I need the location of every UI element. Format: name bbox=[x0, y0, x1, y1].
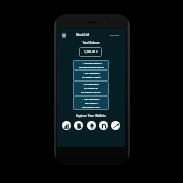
button[interactable]: Portfolio bbox=[62, 121, 71, 130]
staticText: NEO Addresses: 1 bbox=[84, 98, 100, 101]
button[interactable]: Markets bbox=[111, 121, 120, 130]
staticText: 1,280.60 € bbox=[84, 50, 98, 54]
staticText: ETH Addresses: 1 bbox=[84, 83, 100, 86]
staticText: Explore Your Wallets bbox=[57, 114, 125, 118]
staticText: Total Balance bbox=[57, 41, 125, 45]
staticText: ETH Balance: 185.87 € bbox=[81, 91, 101, 94]
button[interactable]: Open menu bbox=[61, 31, 67, 39]
staticText: Exchange Tokens: 3 bbox=[84, 62, 102, 65]
button[interactable]: 1,280.60 € bbox=[79, 47, 102, 57]
staticText: Exchange Balance: 958.18 € bbox=[79, 66, 104, 69]
button[interactable]: NEO Addresses: 1 bbox=[73, 96, 109, 110]
button[interactable]: NEO wallet bbox=[99, 121, 108, 130]
button[interactable]: Ethereum wallet bbox=[87, 121, 96, 130]
button[interactable]: Exchange Tokens: 3 bbox=[73, 60, 109, 70]
staticText: ETH Tokens: 29 bbox=[84, 87, 98, 90]
button[interactable]: BTC Addresses: 1 bbox=[73, 70, 109, 81]
staticText: BTC Addresses: 1 bbox=[85, 72, 101, 75]
staticText: BTC Balance: 0.081 ₿ bbox=[82, 76, 101, 79]
button[interactable]: ETH Addresses: 1 bbox=[73, 81, 109, 96]
staticText: NEO Tokens: 4 bbox=[85, 102, 98, 105]
button[interactable]: FULL SYNC bbox=[110, 34, 119, 36]
button[interactable]: Bitcoin wallet bbox=[74, 121, 83, 130]
staticText: BlackCell bbox=[76, 33, 90, 37]
staticText: NEO Balance: 1.45 € bbox=[82, 106, 100, 109]
